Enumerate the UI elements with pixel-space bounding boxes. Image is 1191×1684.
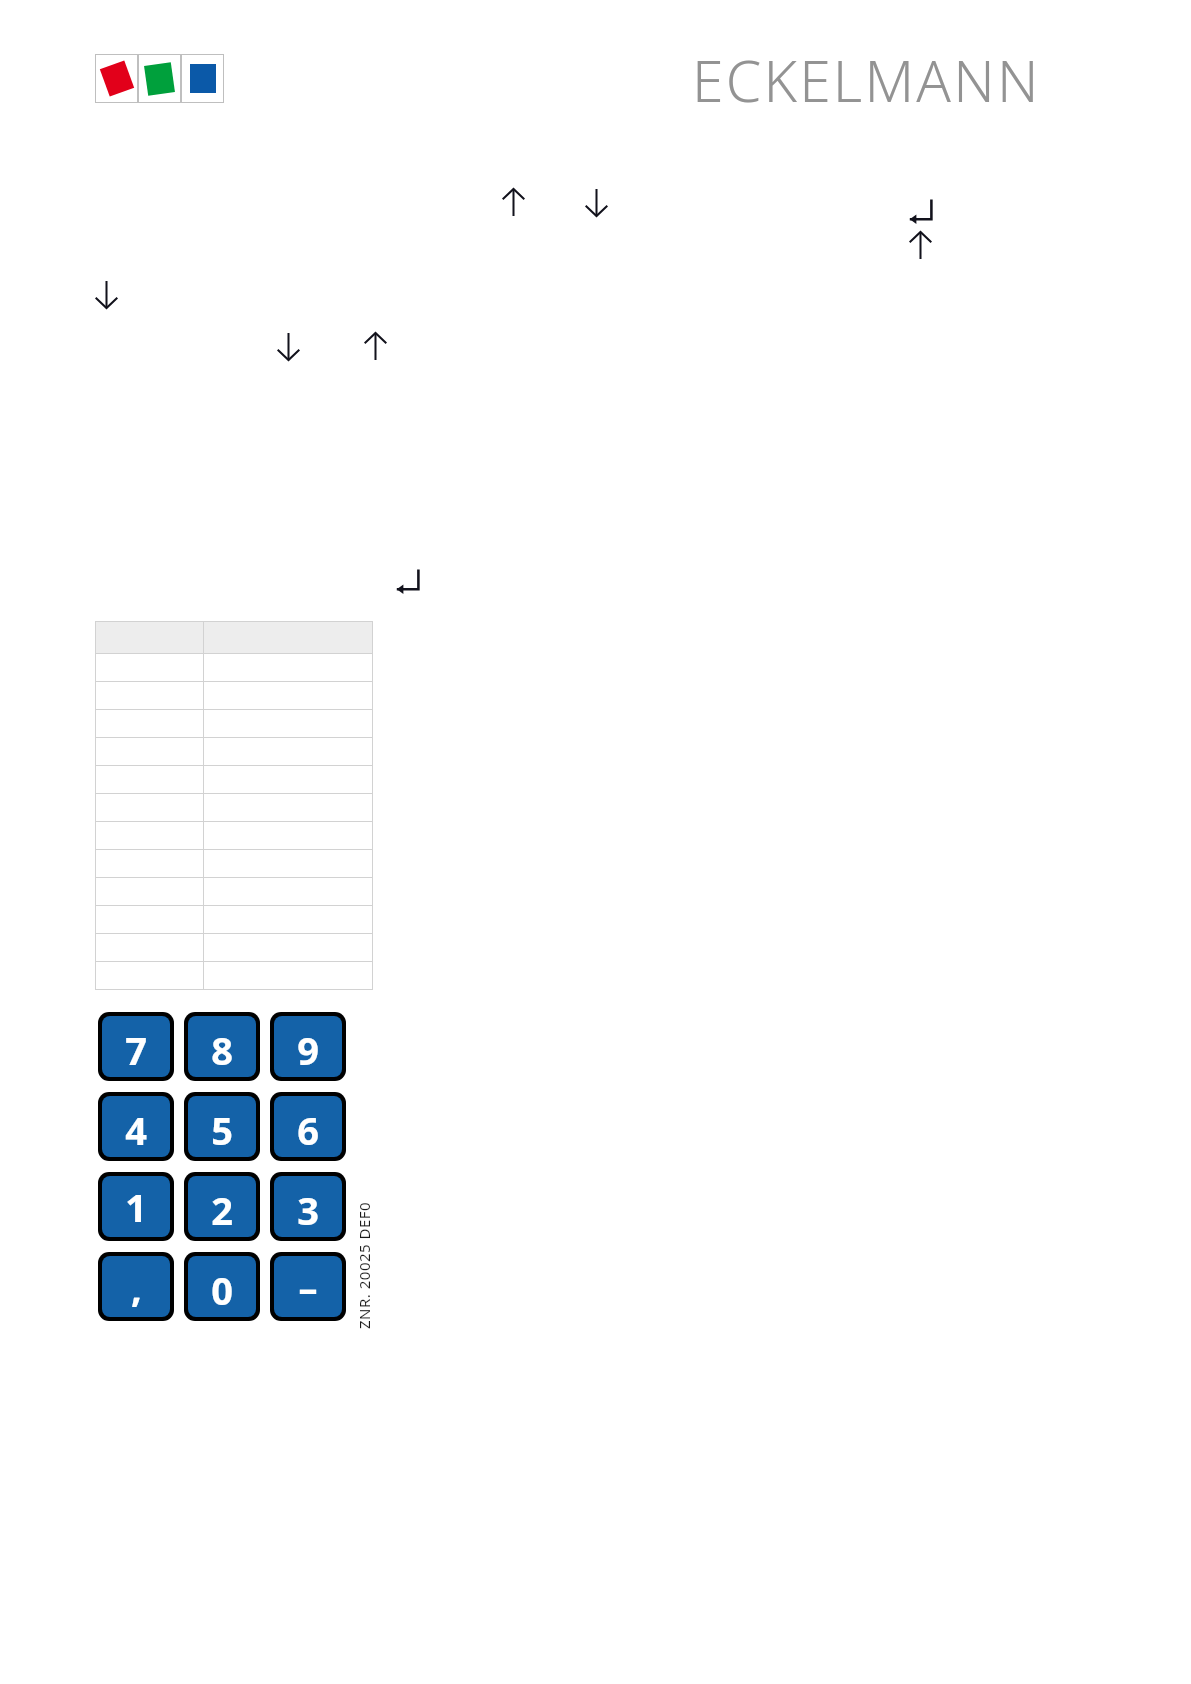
staticText: ZNR. 20025 DEF0 (354, 1201, 374, 1329)
other: Up (500, 189, 527, 216)
other: Up (907, 232, 934, 259)
staticText: 1 (125, 1181, 147, 1233)
button[interactable]: 3 (274, 1176, 342, 1237)
other: Down (93, 281, 120, 308)
button[interactable]: – (274, 1256, 342, 1317)
button[interactable] (95, 682, 373, 709)
button[interactable]: 4 (102, 1096, 170, 1157)
button[interactable]: 9 (274, 1016, 342, 1077)
button[interactable]: 8 (188, 1016, 256, 1077)
button[interactable] (95, 766, 373, 793)
staticText: – (298, 1261, 318, 1313)
button[interactable] (95, 794, 373, 821)
button[interactable] (95, 878, 373, 905)
staticText: 3 (297, 1184, 319, 1236)
staticText: 4 (125, 1104, 147, 1156)
staticText: 8 (211, 1024, 233, 1076)
button[interactable]: 6 (274, 1096, 342, 1157)
staticText: 0 (211, 1264, 233, 1316)
staticText: ECKELMANN (692, 41, 1041, 119)
staticText: 5 (211, 1104, 233, 1156)
staticText: , (131, 1261, 142, 1313)
button[interactable]: 2 (188, 1176, 256, 1237)
staticText: 7 (125, 1024, 147, 1076)
button[interactable]: 1 (102, 1176, 170, 1237)
button[interactable] (95, 822, 373, 849)
other: Enter (905, 197, 935, 227)
button[interactable] (95, 906, 373, 933)
button[interactable] (95, 738, 373, 765)
button[interactable]: , (102, 1256, 170, 1317)
button[interactable] (95, 934, 373, 961)
staticText: 2 (211, 1184, 233, 1236)
button[interactable] (95, 850, 373, 877)
other: Down (583, 189, 610, 216)
other: Enter (392, 567, 422, 597)
other: Up (362, 333, 389, 360)
button[interactable]: 7 (102, 1016, 170, 1077)
staticText: 6 (297, 1104, 319, 1156)
staticText: 9 (297, 1024, 319, 1076)
button[interactable]: 5 (188, 1096, 256, 1157)
button[interactable] (95, 710, 373, 737)
button[interactable]: 0 (188, 1256, 256, 1317)
other: Down (275, 333, 302, 360)
button[interactable] (95, 962, 373, 989)
button[interactable] (95, 654, 373, 681)
